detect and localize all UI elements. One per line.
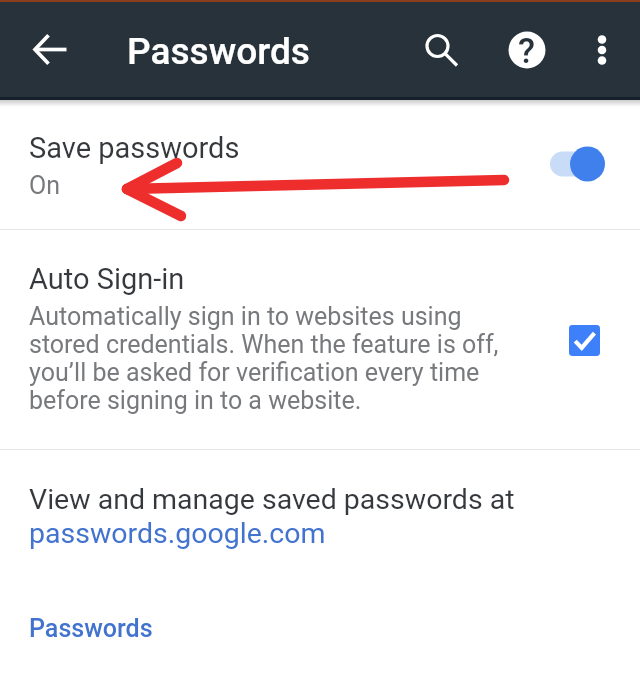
- button[interactable]: Save passwords: [0, 100, 640, 229]
- button[interactable]: Auto Sign-in, checked: [562, 318, 606, 362]
- button[interactable]: Auto Sign-in: [0, 230, 640, 449]
- button[interactable]: passwords.google.com: [29, 517, 326, 550]
- staticText: passwords.google.com: [29, 517, 326, 550]
- staticText: On: [29, 171, 61, 200]
- staticText: Passwords: [127, 30, 310, 73]
- staticText: Save passwords: [29, 131, 240, 165]
- staticText: Auto Sign-in: [29, 262, 185, 296]
- staticText: ?: [518, 31, 536, 69]
- staticText: View and manage saved passwords at: [29, 483, 515, 516]
- button[interactable]: Passwords: [29, 614, 153, 643]
- button[interactable]: More options: [578, 26, 626, 74]
- button[interactable]: Help: [503, 26, 551, 74]
- staticText: Automatically sign in to websites using …: [29, 302, 509, 415]
- button[interactable]: Search: [418, 27, 466, 75]
- button[interactable]: Save passwords, on: [546, 140, 608, 188]
- button[interactable]: Navigate up: [26, 25, 74, 73]
- staticText: Passwords: [29, 614, 153, 643]
